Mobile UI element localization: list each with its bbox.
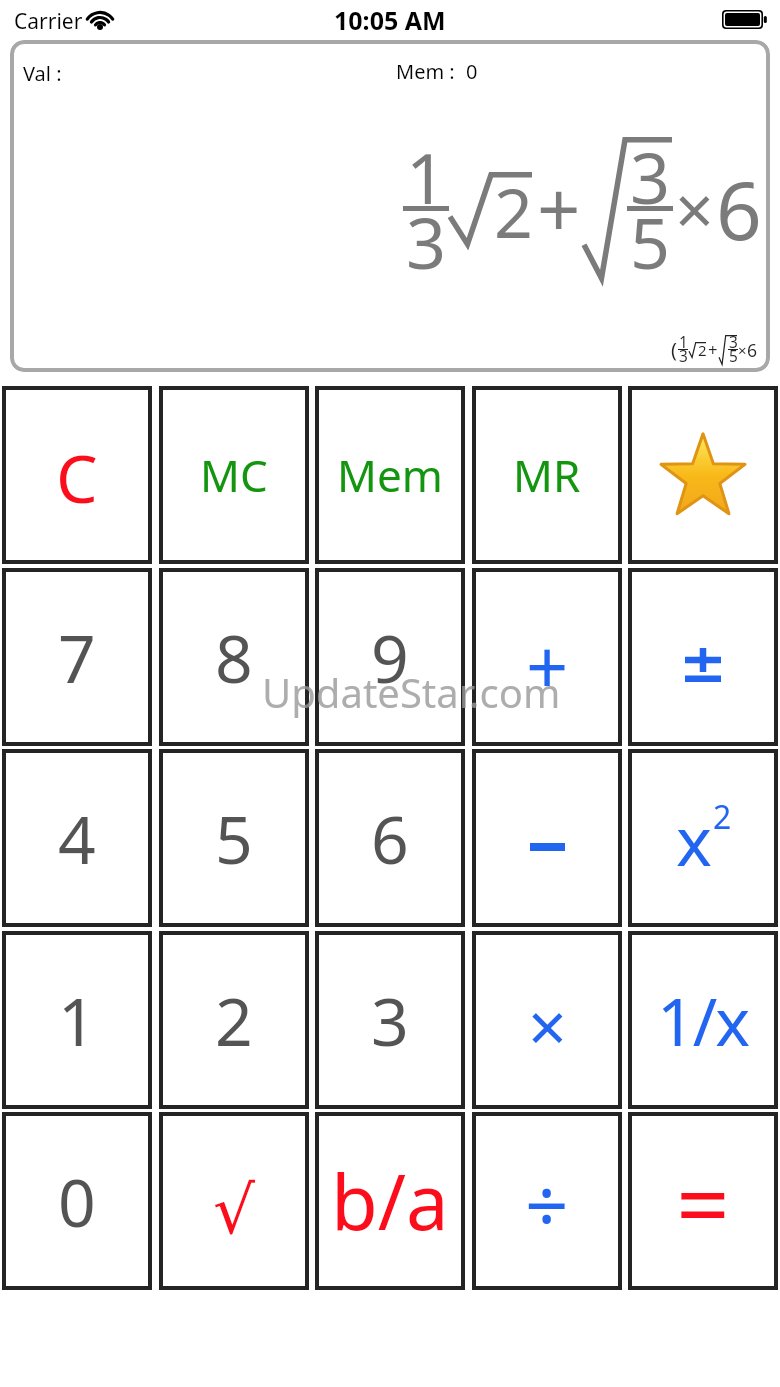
button[interactable] xyxy=(628,386,778,564)
button[interactable] xyxy=(472,749,622,927)
staticText: 10:05 AM xyxy=(334,3,446,37)
staticText: MR xyxy=(513,445,581,505)
button[interactable]: 1/x xyxy=(628,931,778,1109)
staticText: ( xyxy=(671,336,677,363)
staticText: C xyxy=(56,432,98,522)
button[interactable]: 9 xyxy=(315,568,465,746)
staticText: + xyxy=(526,615,569,716)
button[interactable]: 3 xyxy=(315,931,465,1109)
staticText: 2 xyxy=(713,795,732,839)
staticText: 5 xyxy=(215,793,253,883)
button[interactable]: b/a xyxy=(315,1112,465,1290)
button[interactable]: x xyxy=(628,749,778,927)
staticText: 2 xyxy=(698,340,707,360)
staticText: 2 xyxy=(215,975,253,1065)
button[interactable]: MC xyxy=(159,386,309,564)
staticText: 2 xyxy=(494,165,533,258)
staticText: Mem : xyxy=(396,58,455,85)
button[interactable]: 1 xyxy=(2,931,152,1109)
staticText: 4 xyxy=(58,793,96,883)
staticText: √ xyxy=(213,1172,256,1249)
staticText: 3 xyxy=(729,332,738,353)
staticText: 3 xyxy=(406,194,447,289)
staticText: 0 xyxy=(58,1156,96,1246)
staticText: × xyxy=(675,162,714,255)
button[interactable]: Mem xyxy=(315,386,465,564)
staticText: 1 xyxy=(58,975,96,1065)
button[interactable]: 7 xyxy=(2,568,152,746)
button[interactable]: ÷ xyxy=(472,1112,622,1290)
staticText: Val : xyxy=(23,60,62,87)
button[interactable]: C xyxy=(2,386,152,564)
staticText: 7 xyxy=(58,612,96,702)
button[interactable]: 6 xyxy=(315,749,465,927)
staticText: + xyxy=(708,338,718,361)
button[interactable]: 0 xyxy=(2,1112,152,1290)
staticText: 6 xyxy=(371,793,409,883)
button[interactable]: 4 xyxy=(2,749,152,927)
staticText: x xyxy=(676,793,712,886)
button[interactable]: MR xyxy=(472,386,622,564)
button[interactable]: 8 xyxy=(159,568,309,746)
staticText: UpdateStar.com xyxy=(262,665,561,719)
staticText: 5 xyxy=(729,346,738,367)
button[interactable]: √ xyxy=(159,1112,309,1290)
staticText: × xyxy=(528,979,567,1072)
staticText: 1 xyxy=(406,129,447,224)
staticText: Mem xyxy=(337,445,443,505)
staticText: 3 xyxy=(630,129,671,224)
staticText: 5 xyxy=(630,194,671,289)
button[interactable]: × xyxy=(472,931,622,1109)
staticText: ÷ xyxy=(525,1152,569,1256)
button[interactable]: + xyxy=(472,568,622,746)
staticText: 3 xyxy=(679,346,688,367)
staticText: b/a xyxy=(331,1149,449,1253)
button[interactable]: 5 xyxy=(159,749,309,927)
staticText: + xyxy=(537,157,581,261)
staticText: 0 xyxy=(466,58,478,85)
button[interactable] xyxy=(628,568,778,746)
staticText: 3 xyxy=(371,975,409,1065)
staticText: 9 xyxy=(371,612,409,702)
staticText: 1/x xyxy=(657,975,749,1065)
staticText: Carrier xyxy=(14,7,83,36)
staticText: 1 xyxy=(679,332,688,353)
staticText: 6 xyxy=(747,338,758,362)
staticText: × xyxy=(738,340,747,360)
staticText: = xyxy=(676,1138,730,1266)
staticText: MC xyxy=(200,445,268,505)
staticText: 8 xyxy=(215,612,253,702)
button[interactable]: = xyxy=(628,1112,778,1290)
staticText: 6 xyxy=(716,154,762,263)
button[interactable]: 2 xyxy=(159,931,309,1109)
